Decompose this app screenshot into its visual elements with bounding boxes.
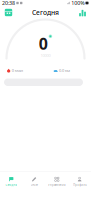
staticText: 20:38 [2, 0, 15, 7]
staticText: Упражнения [48, 183, 66, 187]
staticText: Сегодня [32, 8, 59, 17]
staticText: Профиль [73, 183, 86, 187]
staticText: 100% [71, 0, 84, 7]
button[interactable]: Профиль [68, 175, 91, 188]
staticText: 0 ккал [12, 68, 23, 73]
staticText: 0.0 км [59, 68, 70, 73]
button[interactable]: Сегодня [0, 175, 23, 188]
staticText: Сегодня [5, 183, 17, 187]
button[interactable]: Calendar [0, 6, 17, 19]
staticText: 10000 [40, 53, 50, 58]
staticText: Отчет [31, 183, 38, 187]
staticText: 0 [39, 33, 48, 54]
button[interactable]: Упражнения [45, 175, 68, 188]
button[interactable]: Отчет [23, 175, 46, 188]
button[interactable]: Statistics [74, 6, 91, 19]
